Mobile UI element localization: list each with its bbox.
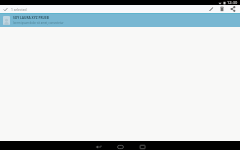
button[interactable]: Share — [227, 5, 238, 13]
staticText: SOY LAURA XYZ PRUEB — [13, 16, 49, 20]
button[interactable]: Done — [2, 6, 9, 13]
staticText: 12:30 — [227, 0, 238, 5]
button[interactable]: Edit — [205, 5, 216, 13]
staticText: 1 selected — [11, 7, 27, 11]
staticText: lorem ipsum dolor sit amet, consectetur — [13, 21, 64, 25]
button[interactable]: Delete — [216, 5, 227, 13]
button[interactable]: Recents — [139, 141, 146, 150]
button[interactable]: Back — [95, 141, 102, 150]
button[interactable]: SOY LAURA XYZ PRUEB — [0, 13, 240, 27]
button[interactable]: Home — [117, 141, 124, 150]
